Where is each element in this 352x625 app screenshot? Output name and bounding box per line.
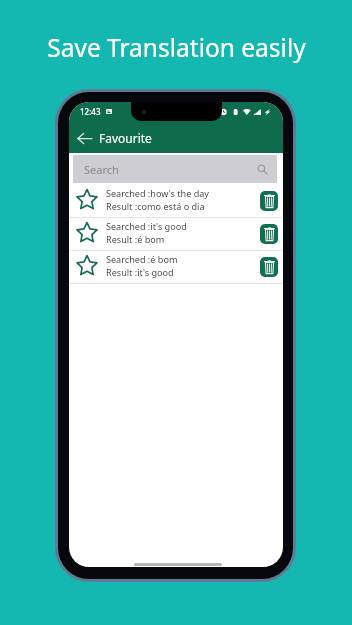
button[interactable]: Favourite (69, 218, 283, 250)
staticText: Searched :é bom (106, 253, 178, 265)
staticText: Result :como está o dia (106, 200, 205, 212)
staticText: Save Translation easily (47, 31, 306, 64)
button[interactable]: Favourite (76, 188, 98, 210)
button[interactable]: Delete (260, 224, 278, 244)
button[interactable]: Favourite (69, 251, 283, 283)
staticText: Favourite (99, 130, 152, 146)
staticText: 12:43 (80, 106, 101, 117)
button[interactable]: Favourite (76, 221, 98, 243)
staticText: Result :it's good (106, 266, 174, 278)
staticText: Searched :how's the day (106, 187, 209, 199)
button[interactable]: Delete (260, 191, 278, 211)
button[interactable]: Back (74, 125, 95, 151)
staticText: Result :é bom (106, 233, 165, 245)
staticText: Search (84, 162, 119, 177)
staticText: Searched :it's good (106, 220, 187, 232)
button[interactable]: Favourite (69, 185, 283, 217)
button[interactable]: Delete (260, 257, 278, 277)
button[interactable]: Search (73, 155, 277, 183)
button[interactable]: Favourite (76, 254, 98, 276)
